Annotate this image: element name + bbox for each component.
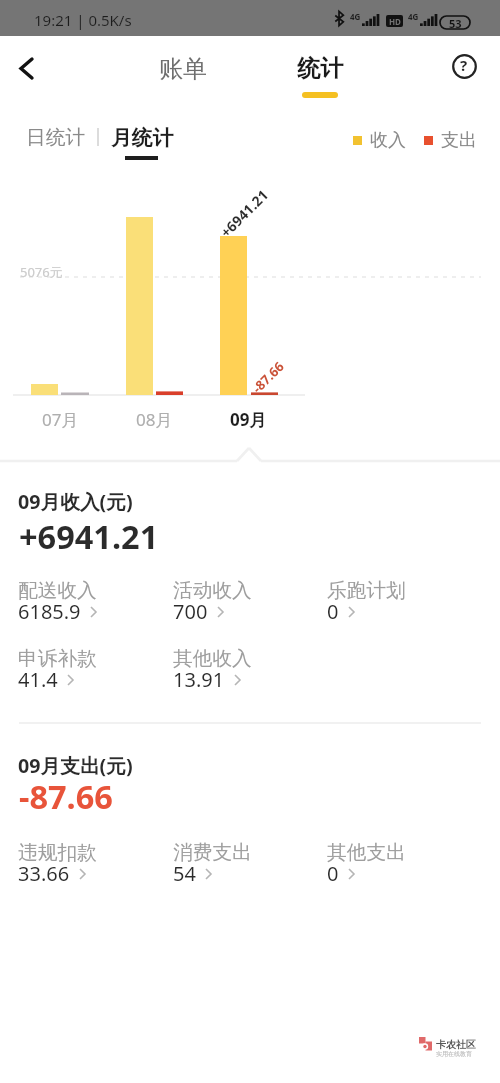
staticText: 6185.9: [18, 598, 81, 625]
staticText: 日统计: [26, 125, 86, 150]
button[interactable]: 07月: [13, 407, 107, 431]
button[interactable]: 消费支出: [173, 840, 323, 892]
staticText: 08月: [136, 408, 173, 431]
staticText: 41.4: [18, 666, 58, 693]
staticText: 消费支出: [173, 840, 252, 865]
staticText: 统计: [297, 54, 343, 83]
staticText: 5076元: [20, 263, 63, 281]
button[interactable]: 活动收入: [173, 578, 323, 630]
staticText: 4G: [350, 11, 361, 22]
staticText: 配送收入: [18, 578, 97, 603]
staticText: 53: [449, 16, 462, 29]
button[interactable]: 其他收入: [173, 646, 323, 698]
staticText: -87.66: [19, 774, 113, 818]
staticText: 13.91: [173, 666, 225, 693]
staticText: 19:21 | 0.5K/s: [34, 10, 132, 30]
staticText: 违规扣款: [18, 840, 97, 865]
button[interactable]: 日统计: [26, 125, 88, 153]
button[interactable]: 08月: [107, 407, 201, 431]
staticText: HD: [389, 16, 401, 27]
button[interactable]: 09月: [201, 407, 295, 431]
staticText: 支出: [441, 129, 477, 152]
staticText: 申诉补款: [18, 646, 97, 671]
staticText: 33.66: [18, 860, 70, 887]
staticText: 0: [327, 860, 339, 887]
staticText: 4G: [408, 11, 419, 22]
button[interactable]: 申诉补款: [18, 646, 168, 698]
staticText: +6941.21: [216, 186, 272, 241]
button[interactable]: 月统计: [111, 125, 175, 169]
button[interactable]: 配送收入: [18, 578, 168, 630]
button[interactable]: Help: [442, 44, 486, 88]
staticText: 09月收入(元): [18, 488, 133, 515]
staticText: 其他收入: [173, 646, 252, 671]
staticText: 0: [327, 598, 339, 625]
staticText: -87.66: [248, 357, 288, 397]
staticText: 实用在线教育: [436, 1050, 472, 1058]
staticText: 07月: [42, 408, 79, 431]
button[interactable]: 其他支出: [327, 840, 477, 892]
staticText: 其他支出: [327, 840, 406, 865]
button[interactable]: 账单: [145, 49, 221, 89]
staticText: 卡农社区: [436, 1038, 476, 1051]
staticText: ?: [460, 55, 468, 75]
staticText: 活动收入: [173, 578, 252, 603]
staticText: 54: [173, 860, 196, 887]
staticText: 700: [173, 598, 208, 625]
staticText: 乐跑计划: [327, 578, 406, 603]
staticText: 09月支出(元): [18, 752, 133, 779]
button[interactable]: 违规扣款: [18, 840, 168, 892]
button[interactable]: 乐跑计划: [327, 578, 477, 630]
button[interactable]: 统计: [286, 54, 354, 110]
staticText: 账单: [159, 54, 207, 84]
staticText: 09月: [230, 408, 267, 431]
staticText: 收入: [370, 129, 406, 152]
staticText: +6941.21: [19, 514, 159, 558]
staticText: 月统计: [111, 125, 174, 151]
button[interactable]: Back: [4, 46, 48, 90]
